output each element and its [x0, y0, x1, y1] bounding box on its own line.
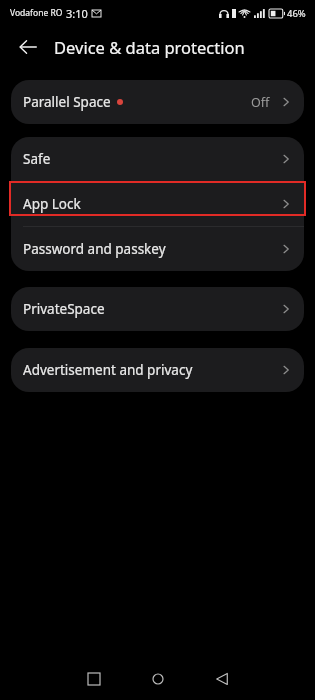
- staticText: 46%: [287, 7, 306, 20]
- staticText: Device & data protection: [54, 36, 245, 58]
- button[interactable]: Recent apps: [70, 658, 118, 700]
- staticText: Advertisement and privacy: [23, 361, 193, 379]
- staticText: 3:10: [66, 6, 88, 21]
- button[interactable]: Password and passkey: [11, 227, 304, 271]
- button[interactable]: App Lock: [11, 182, 304, 226]
- button[interactable]: Safe: [11, 137, 304, 181]
- button[interactable]: Back: [13, 32, 43, 62]
- staticText: Off: [251, 94, 270, 111]
- button[interactable]: Parallel Space: [11, 80, 304, 124]
- button[interactable]: Advertisement and privacy: [11, 348, 304, 392]
- staticText: Safe: [23, 150, 51, 168]
- button[interactable]: PrivateSpace: [11, 287, 304, 331]
- staticText: Password and passkey: [23, 240, 166, 258]
- staticText: App Lock: [23, 195, 81, 213]
- staticText: Vodafone RO: [10, 7, 63, 19]
- button[interactable]: Home: [134, 658, 182, 700]
- button[interactable]: Back: [198, 658, 246, 700]
- staticText: PrivateSpace: [23, 300, 105, 318]
- staticText: Parallel Space: [23, 93, 111, 111]
